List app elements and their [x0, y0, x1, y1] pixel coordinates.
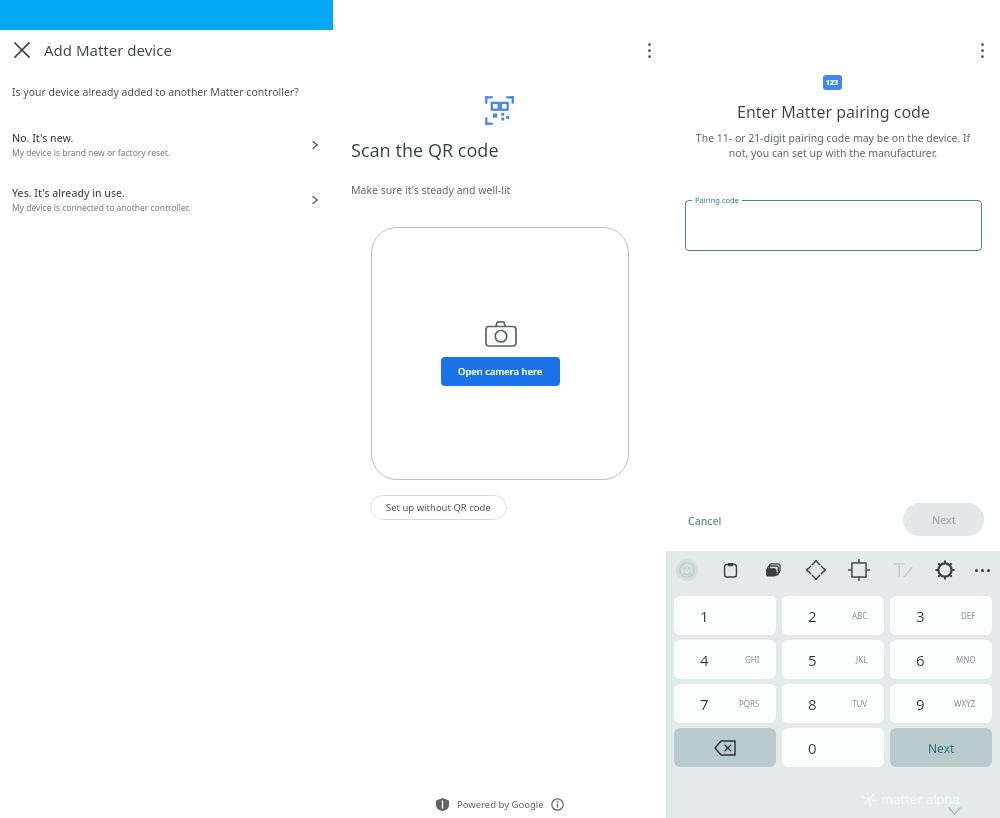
button[interactable]: 0 [782, 728, 884, 767]
button[interactable]: 3 [890, 596, 992, 635]
staticText: My device is brand new or factory reset. [12, 147, 171, 159]
button[interactable]: 5 [782, 640, 884, 679]
button[interactable]: 4 [674, 640, 776, 679]
button[interactable]: Next [890, 728, 992, 767]
button[interactable]: 1 [674, 596, 776, 635]
staticText: JKL [856, 654, 868, 665]
button[interactable]: Next [903, 503, 984, 536]
staticText: Open camera here [458, 365, 543, 378]
staticText: 5 [808, 650, 817, 670]
button[interactable]: Hide keyboard [944, 801, 964, 818]
button[interactable]: Backspace [674, 728, 776, 767]
button[interactable]: Close [8, 36, 36, 64]
button[interactable]: 7 [674, 684, 776, 723]
staticText: Pairing code [695, 195, 739, 205]
staticText: DEF [961, 610, 976, 621]
button[interactable]: Handwriting [891, 559, 913, 581]
staticText: 7 [700, 694, 709, 714]
staticText: 9 [916, 694, 925, 714]
staticText: Cancel [688, 514, 722, 528]
staticText: 1 [700, 606, 709, 626]
staticText: Yes. It's already in use. [12, 186, 125, 200]
staticText: 3 [916, 606, 925, 626]
staticText: Set up without QR code [386, 501, 491, 514]
button[interactable]: 6 [890, 640, 992, 679]
staticText: Powered by Google [457, 798, 544, 811]
staticText: No. It's new. [12, 131, 74, 145]
staticText: Enter Matter pairing code [737, 101, 930, 123]
staticText: Next [932, 513, 956, 527]
button[interactable]: Crop [848, 559, 870, 581]
button[interactable]: Emoji [676, 559, 698, 581]
button[interactable]: Cancel [678, 508, 732, 534]
staticText: 123 [826, 78, 839, 88]
button[interactable]: Set up without QR code [370, 495, 507, 520]
button[interactable]: 9 [890, 684, 992, 723]
staticText: 8 [808, 694, 817, 714]
staticText: 0 [808, 738, 817, 758]
staticText: TUV [852, 698, 868, 709]
button[interactable]: More [973, 560, 992, 580]
button[interactable]: Info [551, 798, 564, 811]
button[interactable]: Stickers [762, 559, 784, 581]
staticText: 6 [916, 650, 925, 670]
button[interactable]: More options [968, 36, 996, 64]
staticText: Scan the QR code [351, 138, 499, 163]
button[interactable]: Yes. It's already in use. [0, 181, 333, 219]
staticText: Add Matter device [44, 40, 172, 60]
staticText: matter alpha [881, 790, 960, 808]
staticText: The 11- or 21-digit pairing code may be … [686, 131, 980, 160]
button[interactable]: No. It's new. [0, 126, 333, 164]
button[interactable]: Clipboard [719, 559, 741, 581]
button[interactable]: Move cursor [805, 559, 827, 581]
button[interactable]: Open camera here [441, 357, 560, 386]
staticText: GHI [745, 654, 760, 665]
staticText: MNO [956, 654, 976, 665]
staticText: 4 [700, 650, 709, 670]
button[interactable]: 2 [782, 596, 884, 635]
staticText: Is your device already added to another … [12, 85, 299, 99]
staticText: WXYZ [954, 698, 976, 709]
staticText: 2 [808, 606, 817, 626]
staticText: Make sure it's steady and well-lit [351, 183, 511, 197]
staticText: My device is connected to another contro… [12, 202, 191, 214]
staticText: ABC [852, 610, 868, 621]
staticText: Next [928, 740, 955, 756]
button[interactable]: 8 [782, 684, 884, 723]
button[interactable]: Settings [934, 559, 956, 581]
button[interactable]: More options [635, 36, 663, 64]
staticText: PQRS [739, 698, 760, 709]
button[interactable] [685, 200, 982, 251]
